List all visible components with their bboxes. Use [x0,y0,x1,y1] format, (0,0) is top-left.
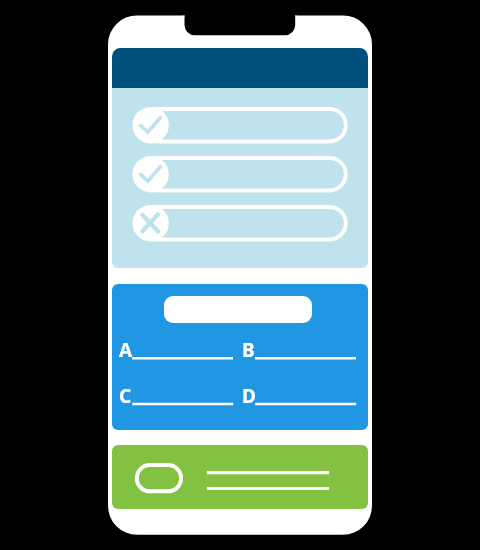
button[interactable]: Completed task [132,107,346,143]
staticText: B [242,337,255,363]
button[interactable]: A [119,337,233,363]
button[interactable]: Summary banner [112,445,368,509]
button[interactable]: Top app bar [112,48,368,88]
staticText: A [119,337,133,363]
staticText: C [119,383,132,409]
staticText: D [242,383,256,409]
button[interactable]: D [242,383,356,409]
button[interactable]: Completed task [132,156,346,192]
button[interactable]: B [242,337,356,363]
button[interactable]: C [119,383,233,409]
button[interactable]: Failed task [132,205,346,241]
button[interactable]: Search field [164,296,312,323]
